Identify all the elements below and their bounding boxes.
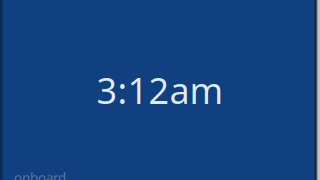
staticText: 3:12am [96, 66, 223, 114]
button[interactable]: onboard [0, 168, 66, 180]
staticText: onboard [14, 168, 66, 180]
